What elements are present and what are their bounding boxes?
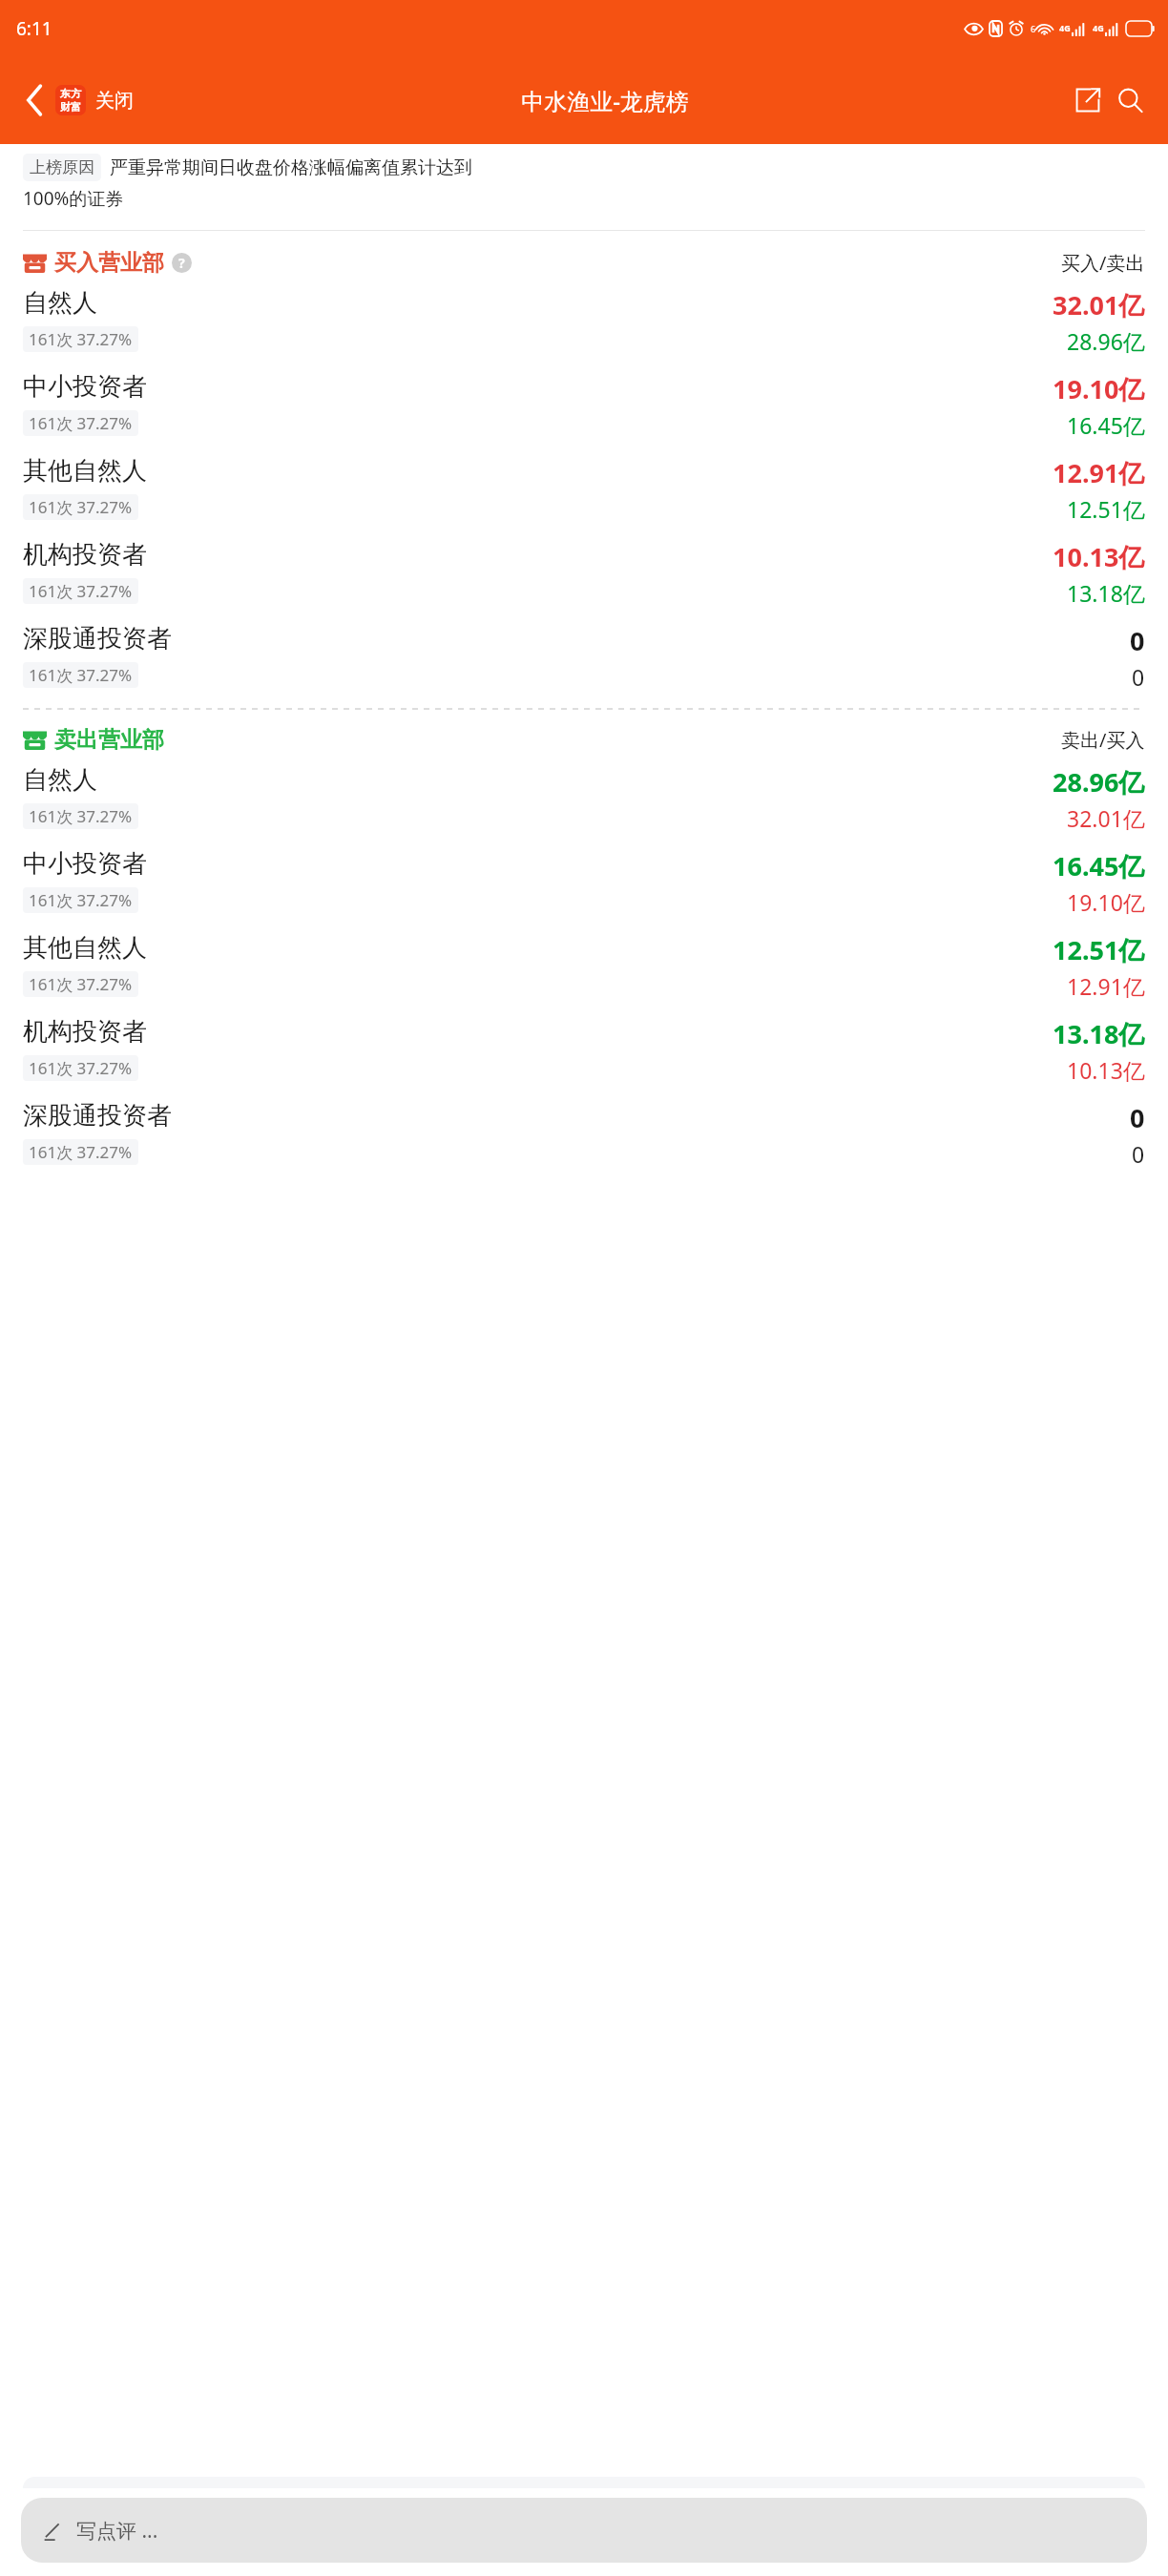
other: Help (172, 253, 192, 273)
staticText: 32.01亿 (1053, 287, 1145, 322)
staticText: 0 (1132, 662, 1145, 692)
button[interactable]: 关闭 (86, 89, 143, 113)
staticText: 买入营业部 (54, 249, 164, 277)
staticText: 中小投资者 (23, 371, 147, 403)
staticText: 6:11 (16, 16, 52, 41)
staticText: 深股通投资者 (23, 1100, 172, 1132)
staticText: 161次 37.27% (29, 1057, 133, 1079)
staticText: 161次 37.27% (29, 805, 133, 827)
staticText: 上榜原因 (30, 157, 94, 177)
staticText: 买入/卖出 (1061, 250, 1145, 276)
staticText: 其他自然人 (23, 932, 147, 964)
staticText: 自然人 (23, 287, 97, 319)
button[interactable]: Search (1109, 79, 1151, 121)
staticText: 10.13亿 (1067, 1055, 1145, 1085)
staticText: 0 (1130, 1100, 1145, 1135)
staticText: 32.01亿 (1067, 803, 1145, 833)
button[interactable]: Back (13, 79, 55, 121)
staticText: 关闭 (95, 89, 134, 113)
staticText: 深股通投资者 (23, 623, 172, 654)
staticText: 16.45亿 (1067, 410, 1145, 440)
staticText: 中水渔业-龙虎榜 (521, 85, 689, 116)
button[interactable]: 自然人 (0, 757, 1168, 841)
staticText: 12.51亿 (1053, 932, 1145, 967)
staticText: 12.91亿 (1067, 971, 1145, 1001)
staticText: 28.96亿 (1067, 326, 1145, 356)
staticText: 卖出/买入 (1061, 727, 1145, 753)
staticText: 4G (1059, 22, 1071, 33)
staticText: 161次 37.27% (29, 1141, 133, 1163)
staticText: 财富 (60, 100, 81, 114)
staticText: 中小投资者 (23, 848, 147, 880)
staticText: 4G (1093, 22, 1104, 33)
staticText: 28.96亿 (1053, 764, 1145, 800)
staticText: 东方 (60, 87, 81, 100)
staticText: 0 (1132, 1139, 1145, 1169)
staticText: 机构投资者 (23, 1016, 147, 1048)
staticText: 161次 37.27% (29, 412, 133, 434)
staticText: 6 (1031, 23, 1036, 34)
staticText: 其他自然人 (23, 455, 147, 487)
staticText: 卖出营业部 (54, 726, 164, 754)
staticText: 161次 37.27% (29, 496, 133, 518)
button[interactable]: 中小投资者 (0, 364, 1168, 447)
staticText: 161次 37.27% (29, 664, 133, 686)
button[interactable]: 深股通投资者 (0, 1092, 1168, 1176)
staticText: 自然人 (23, 764, 97, 796)
staticText: 机构投资者 (23, 539, 147, 571)
button[interactable]: 机构投资者 (0, 1008, 1168, 1092)
button[interactable]: 其他自然人 (0, 924, 1168, 1008)
button[interactable]: 买入营业部 (0, 246, 1168, 280)
staticText: 19.10亿 (1053, 371, 1145, 406)
button[interactable]: 机构投资者 (0, 531, 1168, 615)
staticText: 12.51亿 (1067, 494, 1145, 524)
staticText: 16.45亿 (1053, 848, 1145, 883)
staticText: 12.91亿 (1053, 455, 1145, 490)
staticText: 严重异常期间日收盘价格涨幅偏离值累计达到 (110, 156, 472, 179)
staticText: 161次 37.27% (29, 973, 133, 995)
staticText: 19.10亿 (1067, 887, 1145, 917)
button[interactable]: 其他自然人 (0, 447, 1168, 531)
staticText: 161次 37.27% (29, 328, 133, 350)
staticText: 100%的证券 (23, 186, 124, 211)
staticText: 161次 37.27% (29, 580, 133, 602)
staticText: 13.18亿 (1067, 578, 1145, 608)
staticText: ? (178, 254, 185, 272)
button[interactable]: 东方财富 (55, 85, 86, 115)
staticText: 13.18亿 (1053, 1016, 1145, 1051)
button[interactable]: 写点评 ... (21, 2498, 1147, 2563)
button[interactable]: 卖出营业部 (0, 723, 1168, 757)
button[interactable]: 自然人 (0, 280, 1168, 364)
button[interactable]: 深股通投资者 (0, 615, 1168, 699)
button[interactable]: Share (1067, 79, 1109, 121)
staticText: 0 (1130, 623, 1145, 658)
staticText: 161次 37.27% (29, 889, 133, 911)
staticText: 10.13亿 (1053, 539, 1145, 574)
staticText: 写点评 ... (76, 2517, 158, 2545)
button[interactable]: 中小投资者 (0, 841, 1168, 924)
